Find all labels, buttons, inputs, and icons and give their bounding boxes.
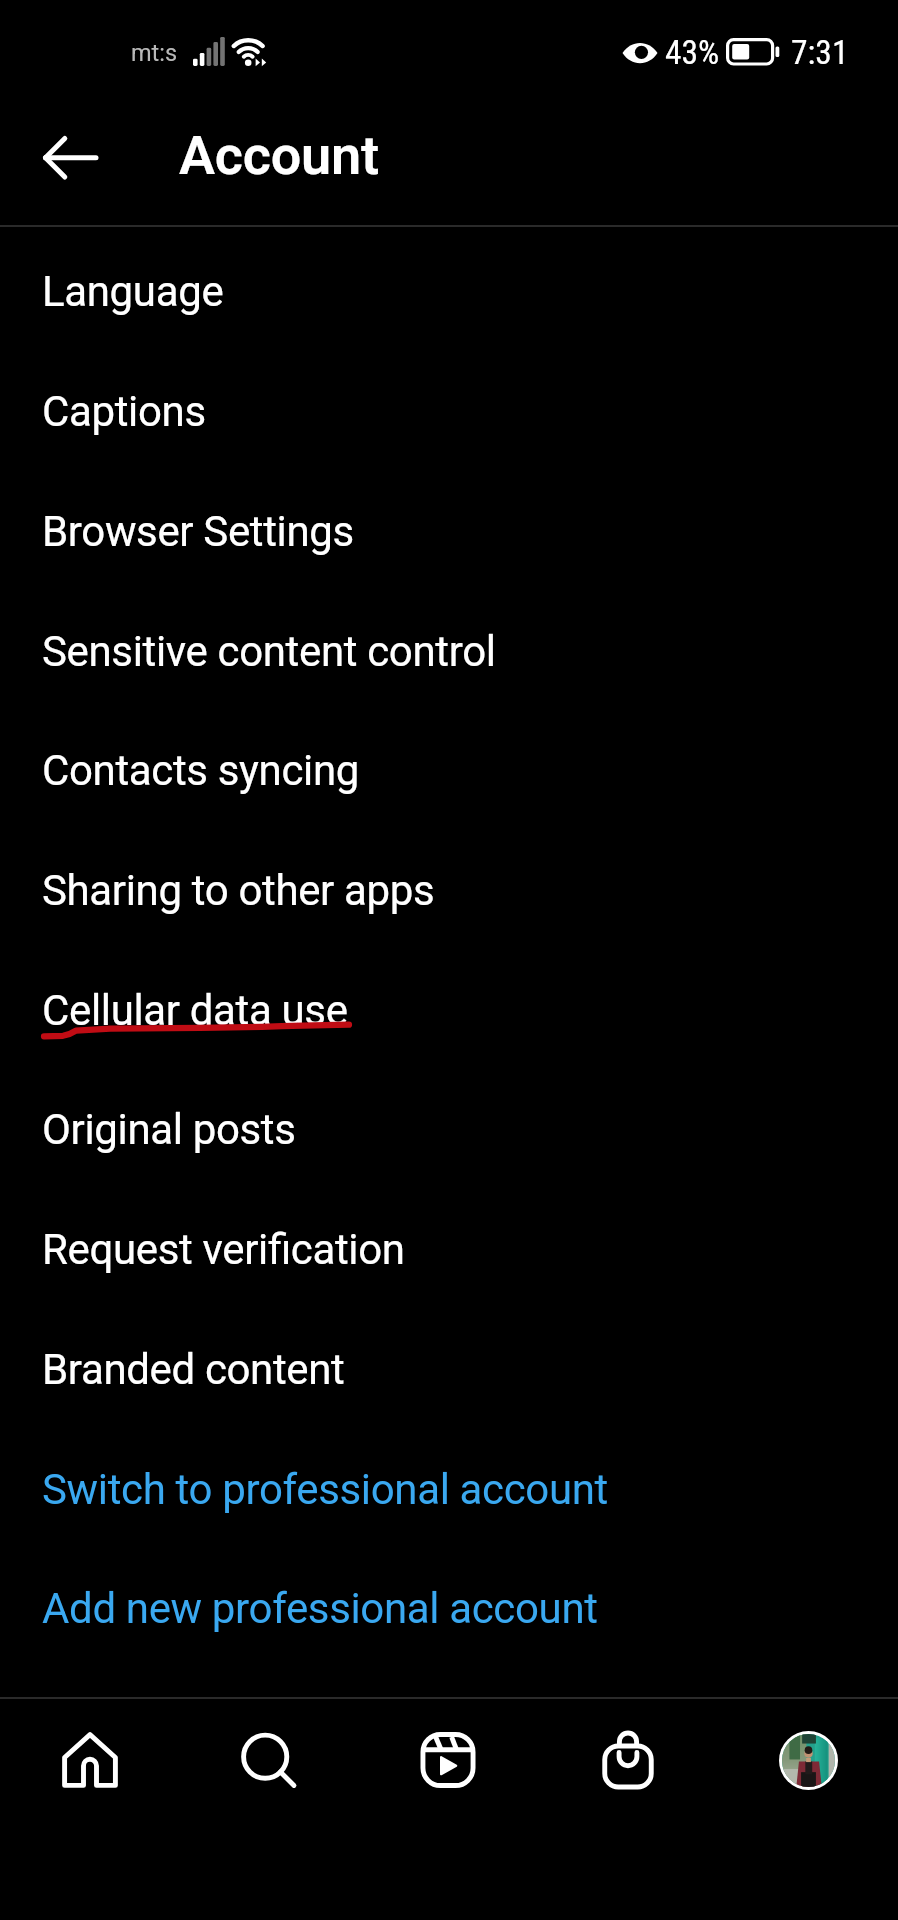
button[interactable]: Search	[179, 1698, 358, 1820]
staticText: Switch to professional account	[42, 1465, 608, 1514]
staticText: 43%	[665, 33, 720, 72]
staticText: Browser Settings	[42, 507, 354, 556]
staticText: 7:31	[791, 33, 849, 72]
button[interactable]: Original posts	[0, 1063, 898, 1183]
staticText: Contacts syncing	[42, 746, 360, 795]
button[interactable]: Browser Settings	[0, 465, 898, 585]
button[interactable]: Profile	[718, 1698, 898, 1820]
button[interactable]: Reels	[358, 1698, 538, 1820]
staticText: Sensitive content control	[42, 627, 496, 676]
staticText: Sharing to other apps	[42, 866, 435, 915]
staticText: Request verification	[42, 1225, 405, 1274]
button[interactable]: Back	[24, 125, 92, 193]
button[interactable]: Branded content	[0, 1303, 898, 1423]
button[interactable]: Add new professional account	[0, 1542, 898, 1662]
staticText: Captions	[42, 387, 206, 436]
staticText: Original posts	[42, 1105, 296, 1154]
button[interactable]: Switch to professional account	[0, 1423, 898, 1543]
staticText: mt:s	[131, 39, 178, 67]
staticText: Branded content	[42, 1345, 345, 1394]
button[interactable]: Captions	[0, 345, 898, 465]
button[interactable]: Request verification	[0, 1183, 898, 1303]
staticText: Language	[42, 267, 224, 316]
button[interactable]: Contacts syncing	[0, 704, 898, 824]
button[interactable]: Language	[0, 225, 898, 345]
button[interactable]: Cellular data use	[0, 944, 898, 1064]
button[interactable]: Sharing to other apps	[0, 824, 898, 944]
staticText: Add new professional account	[42, 1584, 598, 1633]
staticText: Account	[179, 124, 379, 187]
button[interactable]: Sensitive content control	[0, 585, 898, 705]
staticText: Cellular data use	[42, 986, 348, 1035]
button[interactable]: Shop	[538, 1698, 718, 1820]
button[interactable]: Home	[0, 1698, 179, 1820]
